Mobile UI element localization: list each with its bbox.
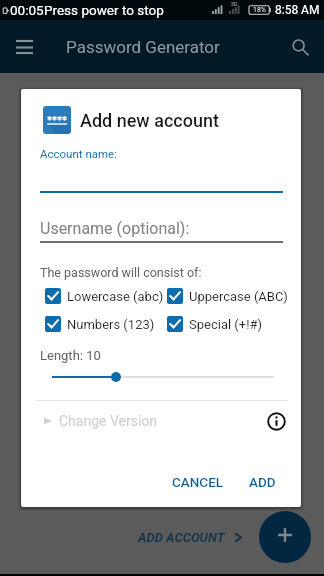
- staticText: Special (+!#): [189, 317, 263, 332]
- staticText: Username (optional):: [40, 219, 190, 238]
- staticText: 00:05: [10, 2, 44, 18]
- button[interactable]: Add account: [259, 511, 311, 563]
- button[interactable]: Numbers (123): [45, 316, 155, 332]
- staticText: Length: 10: [40, 348, 101, 363]
- staticText: Password Generator: [66, 37, 220, 57]
- staticText: Uppercase (ABC): [189, 289, 288, 304]
- button[interactable]: Menu: [0, 23, 48, 71]
- button[interactable]: Change Version: [43, 413, 158, 429]
- staticText: CANCEL: [172, 474, 224, 490]
- button[interactable]: CANCEL: [164, 466, 232, 498]
- staticText: Account name:: [40, 147, 117, 160]
- button[interactable]: Search: [276, 23, 324, 71]
- staticText: Lowercase (abc): [67, 289, 164, 304]
- button[interactable]: ADD ACCOUNT: [138, 530, 245, 545]
- staticText: 18%: [253, 6, 266, 14]
- staticText: ADD ACCOUNT: [138, 530, 225, 545]
- staticText: Press power to stop: [44, 2, 164, 18]
- staticText: 8:58 AM: [275, 3, 320, 17]
- button[interactable]: Info: [264, 409, 288, 433]
- staticText: ADD: [249, 474, 276, 490]
- button[interactable]: Uppercase (ABC): [167, 288, 288, 304]
- button[interactable]: ADD: [241, 466, 284, 498]
- staticText: The password will consist of:: [40, 265, 202, 280]
- button[interactable]: Special (+!#): [167, 316, 263, 332]
- staticText: Numbers (123): [67, 317, 155, 332]
- button[interactable]: Password length: [111, 372, 121, 382]
- staticText: 3G: [231, 1, 238, 7]
- staticText: Add new account: [80, 110, 219, 131]
- button[interactable]: Lowercase (abc): [45, 288, 164, 304]
- staticText: Change Version: [59, 413, 158, 429]
